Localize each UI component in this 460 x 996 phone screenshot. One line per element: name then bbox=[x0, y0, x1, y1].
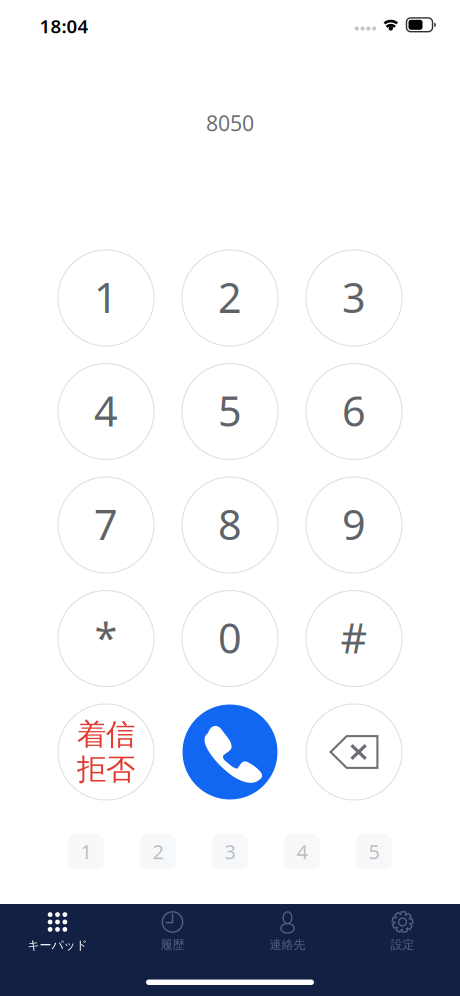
button[interactable]: Call bbox=[182, 704, 277, 799]
button[interactable]: 連絡先 bbox=[230, 904, 345, 958]
staticText: 1 bbox=[94, 270, 118, 324]
button[interactable]: Delete bbox=[306, 704, 402, 800]
staticText: 連絡先 bbox=[269, 937, 305, 952]
staticText: 4 bbox=[94, 383, 118, 438]
staticText: # bbox=[340, 610, 367, 665]
button[interactable]: 2 bbox=[182, 250, 278, 346]
button[interactable]: 3 bbox=[212, 834, 247, 869]
staticText: 設定 bbox=[390, 937, 414, 952]
staticText: 着信 bbox=[77, 716, 135, 752]
button[interactable]: 着信 bbox=[58, 704, 154, 800]
button[interactable]: 4 bbox=[284, 834, 319, 869]
staticText: キーパッド bbox=[27, 938, 87, 953]
staticText: 2 bbox=[218, 270, 242, 324]
button[interactable]: * bbox=[58, 590, 154, 686]
button[interactable]: 4 bbox=[58, 363, 154, 459]
button[interactable]: 1 bbox=[68, 834, 103, 869]
staticText: 18:04 bbox=[39, 14, 88, 38]
staticText: 履歴 bbox=[160, 937, 184, 952]
button[interactable]: 5 bbox=[182, 363, 278, 459]
staticText: 4 bbox=[296, 838, 307, 865]
staticText: 5 bbox=[218, 383, 242, 438]
button[interactable]: 5 bbox=[356, 834, 391, 869]
button[interactable]: 2 bbox=[140, 834, 175, 869]
button[interactable]: 履歴 bbox=[115, 904, 230, 958]
staticText: 1 bbox=[80, 838, 91, 865]
staticText: * bbox=[94, 610, 117, 665]
button[interactable]: 3 bbox=[306, 250, 402, 346]
button[interactable]: キーパッド bbox=[0, 904, 115, 959]
staticText: 6 bbox=[342, 383, 366, 438]
button[interactable]: 7 bbox=[58, 477, 154, 573]
staticText: 2 bbox=[152, 838, 163, 865]
button[interactable]: 1 bbox=[58, 250, 154, 346]
staticText: 8 bbox=[218, 497, 242, 551]
button[interactable]: 8 bbox=[182, 477, 278, 573]
staticText: 3 bbox=[224, 838, 235, 865]
button[interactable]: 0 bbox=[182, 590, 278, 686]
staticText: 拒否 bbox=[77, 751, 135, 787]
button[interactable]: # bbox=[306, 590, 402, 686]
staticText: 9 bbox=[342, 497, 366, 551]
staticText: 0 bbox=[218, 610, 242, 665]
button[interactable]: 6 bbox=[306, 363, 402, 459]
button[interactable]: 9 bbox=[306, 477, 402, 573]
staticText: 7 bbox=[94, 497, 118, 551]
button[interactable]: 設定 bbox=[345, 904, 460, 958]
staticText: 5 bbox=[368, 838, 379, 865]
staticText: 8050 bbox=[206, 109, 254, 137]
staticText: 3 bbox=[342, 270, 366, 324]
